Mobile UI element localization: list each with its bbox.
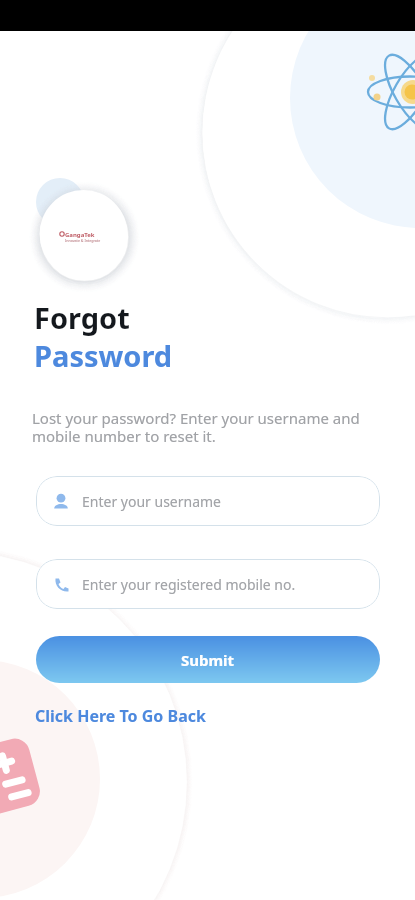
button[interactable]: Enter your username xyxy=(36,476,380,526)
staticText: Submit xyxy=(181,650,235,670)
staticText: Enter your registered mobile no. xyxy=(82,575,296,594)
staticText: Forgot xyxy=(34,298,130,337)
button[interactable]: Submit xyxy=(36,636,380,683)
button[interactable]: Click Here To Go Back xyxy=(35,705,206,727)
button[interactable]: Enter your registered mobile no. xyxy=(36,559,380,609)
staticText: Enter your username xyxy=(82,492,222,511)
staticText: Lost your password? Enter your username … xyxy=(32,408,360,447)
staticText: Password xyxy=(34,336,173,375)
staticText: GangaTek xyxy=(65,231,95,239)
staticText: Innovate & Integrate xyxy=(65,238,101,243)
staticText: Click Here To Go Back xyxy=(35,705,206,727)
